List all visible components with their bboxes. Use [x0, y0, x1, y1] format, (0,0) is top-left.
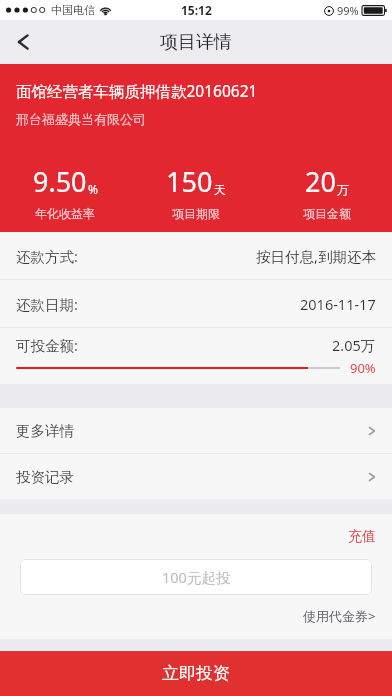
staticText: 可投金额: [16, 335, 78, 355]
staticText: 按日付息,到期还本 [256, 246, 376, 266]
button[interactable]: 立即投资 [0, 651, 392, 696]
staticText: > [368, 607, 376, 625]
button[interactable]: 充值 [332, 524, 392, 550]
staticText: 年化收益率 [35, 206, 95, 221]
staticText: 充值 [348, 528, 376, 546]
staticText: 90% [350, 359, 376, 377]
staticText: 使用代金券 [303, 608, 368, 624]
staticText: 2016-11-17 [300, 294, 376, 314]
staticText: 立即投资 [162, 663, 230, 684]
button[interactable]: Back [0, 20, 46, 64]
staticText: 项目详情 [160, 31, 232, 54]
button[interactable]: 100元起投 [20, 559, 372, 595]
staticText: 面馆经营者车辆质押借款20160621 [16, 80, 258, 101]
staticText: 150 [166, 163, 213, 200]
staticText: 9.50 [33, 163, 87, 200]
staticText: 项目期限 [172, 206, 220, 221]
staticText: 项目金额 [303, 206, 351, 221]
staticText: 还款方式: [16, 246, 78, 266]
staticText: 还款日期: [16, 294, 78, 314]
staticText: 中国电信 [51, 3, 95, 17]
button[interactable]: 更多详情 [0, 408, 392, 453]
button[interactable]: 投资记录 [0, 454, 392, 499]
staticText: 20 [305, 163, 336, 200]
staticText: 万 [337, 182, 349, 197]
button[interactable]: 使用代金券 [287, 603, 392, 629]
staticText: % [88, 181, 98, 197]
staticText: 邢台福盛典当有限公司 [16, 111, 146, 127]
staticText: 15:12 [181, 2, 212, 18]
staticText: 天 [214, 182, 226, 197]
staticText: 100元起投 [162, 567, 231, 587]
staticText: 2.05万 [332, 335, 376, 355]
staticText: 投资记录 [16, 468, 74, 486]
staticText: 99% [337, 3, 359, 18]
staticText: 更多详情 [16, 422, 74, 440]
